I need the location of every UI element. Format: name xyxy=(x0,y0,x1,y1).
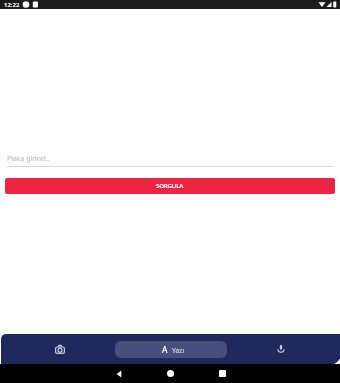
staticText: A xyxy=(162,344,168,356)
button[interactable]: Recent apps xyxy=(204,364,241,383)
staticText: Plaka giriniz.. xyxy=(7,154,50,163)
staticText: SORGULA xyxy=(156,181,184,189)
button[interactable]: A xyxy=(115,341,227,358)
button[interactable]: Back xyxy=(100,364,137,383)
staticText: 12:22 xyxy=(4,1,20,9)
button[interactable]: SORGULA xyxy=(5,178,335,194)
button[interactable]: Home xyxy=(152,364,189,383)
button[interactable]: Voice input xyxy=(272,340,290,358)
button[interactable]: Plaka giriniz.. xyxy=(7,154,333,167)
staticText: Yazı xyxy=(172,346,185,355)
button[interactable]: Camera input xyxy=(51,340,69,358)
